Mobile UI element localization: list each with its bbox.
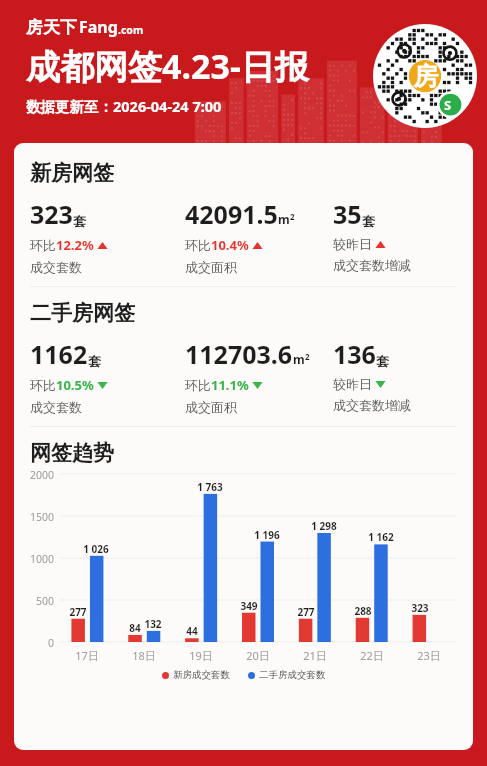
staticText: m [278,211,290,227]
staticText: 成交面积 [185,259,237,275]
staticText: 房天下 [26,17,77,38]
staticText: 套 [73,213,86,229]
staticText: 1 196 [248,528,286,542]
staticText: 二手房网签 [30,300,135,326]
button[interactable]: 112703.6 [185,337,333,415]
staticText: 套 [88,353,101,369]
staticText: 环比 [185,237,211,253]
staticText: 323 [401,601,439,615]
button[interactable]: 扫描二维码关注公众号 [373,24,477,128]
staticText: .com [118,23,144,37]
staticText: 成交套数增减 [333,257,411,273]
staticText: 17日 [68,648,106,663]
staticText: 112703.6 [185,337,293,371]
staticText: m [293,351,305,367]
staticText: 网签趋势 [30,440,114,466]
staticText: 10.5% [56,376,94,394]
staticText: 房 [413,61,438,92]
staticText: 22日 [353,648,391,663]
staticText: 套 [362,213,375,229]
staticText: 0 [20,636,54,650]
button[interactable]: 42091.5 [185,197,333,275]
staticText: 11.1% [211,376,249,394]
staticText: 1000 [20,552,54,566]
staticText: 136 [333,337,376,371]
staticText: 2000 [20,468,54,482]
staticText: 19日 [182,648,220,663]
staticText: 1 026 [77,542,115,556]
staticText: 环比 [185,377,211,393]
staticText: 1162 [30,337,88,371]
staticText: 新房网签 [30,160,114,186]
staticText: 环比 [30,377,56,393]
staticText: 323 [30,197,73,231]
staticText: 500 [20,594,54,608]
staticText: 1 763 [191,480,229,494]
staticText: 环比 [30,237,56,253]
button[interactable]: 35 [333,197,457,273]
staticText: 288 [344,604,382,618]
staticText: 套 [376,353,389,369]
staticText: 349 [230,599,268,613]
staticText: 44 [173,624,211,638]
staticText: 277 [59,605,97,619]
staticText: 成交套数 [30,259,82,275]
button[interactable]: 323 [30,197,185,275]
staticText: 23日 [410,648,448,663]
staticText: 成都网签4.23-日报 [26,43,309,89]
staticText: 数据更新至：2026-04-24 7:00 [26,96,222,116]
staticText: 35 [333,197,362,231]
staticText: 132 [134,617,172,631]
staticText: 较昨日 [333,236,372,252]
staticText: 21日 [296,648,334,663]
staticText: Fang [79,16,118,38]
staticText: 新房成交套数 [173,669,230,681]
staticText: 二手房成交套数 [259,669,326,681]
staticText: 1500 [20,510,54,524]
staticText: 2 [305,351,310,362]
staticText: S [444,96,452,114]
button[interactable]: 136 [333,337,457,413]
staticText: 较昨日 [333,376,372,392]
button[interactable]: 1162 [30,337,185,415]
staticText: 成交面积 [185,399,237,415]
staticText: 277 [287,605,325,619]
staticText: 2 [290,211,295,222]
staticText: 成交套数增减 [333,397,411,413]
staticText: 10.4% [211,236,249,254]
staticText: 1 298 [305,519,343,533]
staticText: 1 162 [362,530,400,544]
staticText: 42091.5 [185,197,278,231]
staticText: 18日 [125,648,163,663]
staticText: 20日 [239,648,277,663]
staticText: 84 [116,621,154,635]
staticText: 成交套数 [30,399,82,415]
staticText: 12.2% [56,236,94,254]
